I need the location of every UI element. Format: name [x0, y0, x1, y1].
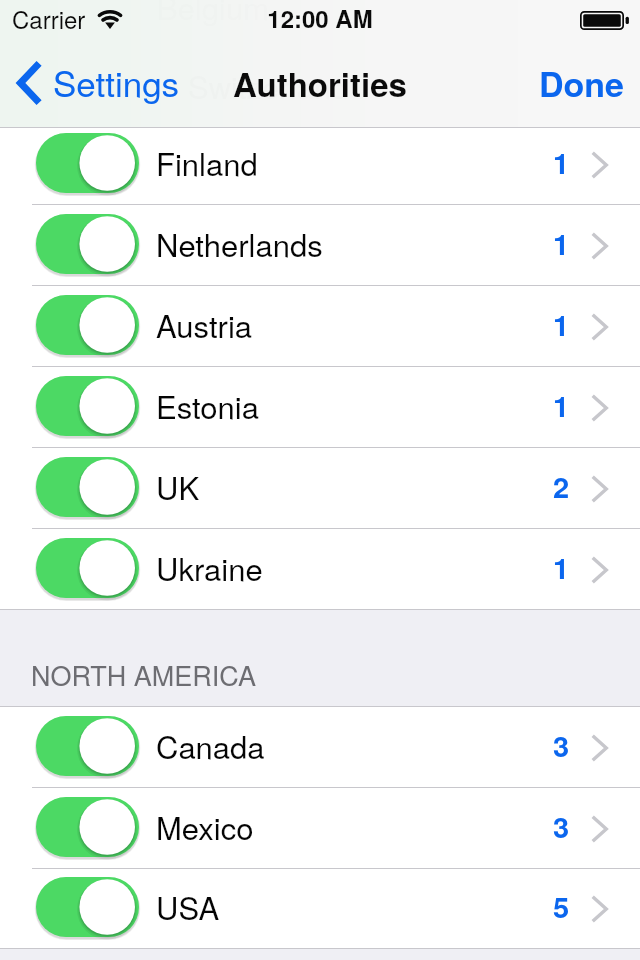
staticText: Netherlands: [156, 221, 323, 265]
button[interactable]: Toggle: [32, 873, 143, 941]
button[interactable]: Settings: [0, 50, 192, 118]
button[interactable]: Toggle: [0, 448, 640, 529]
button[interactable]: Toggle: [0, 788, 640, 869]
staticText: USA: [156, 884, 220, 928]
staticText: 1: [553, 384, 570, 426]
button[interactable]: Toggle: [0, 286, 640, 367]
button[interactable]: Toggle: [0, 367, 640, 448]
staticText: 3: [553, 805, 570, 847]
button[interactable]: Toggle: [32, 712, 143, 780]
staticText: 1: [553, 141, 570, 183]
button[interactable]: Toggle: [32, 793, 143, 861]
staticText: Finland: [156, 140, 258, 184]
button[interactable]: Toggle: [32, 534, 143, 602]
staticText: Canada: [156, 723, 265, 767]
staticText: Done: [539, 59, 624, 108]
staticText: Ukraine: [156, 545, 263, 589]
button[interactable]: Toggle: [32, 210, 143, 278]
staticText: 5: [553, 885, 570, 927]
staticText: Austria: [156, 302, 253, 346]
staticText: 3: [553, 724, 570, 766]
button[interactable]: Toggle: [0, 124, 640, 205]
staticText: Authorities: [233, 60, 407, 107]
button[interactable]: Toggle: [32, 453, 143, 521]
staticText: UK: [156, 464, 200, 508]
staticText: 12:00 AM: [0, 1, 640, 35]
button[interactable]: Toggle: [32, 129, 143, 197]
button[interactable]: Toggle: [32, 372, 143, 440]
staticText: Settings: [53, 57, 180, 107]
button[interactable]: Done: [521, 49, 640, 120]
staticText: 1: [553, 546, 570, 588]
staticText: Carrier: [12, 1, 86, 35]
staticText: 1: [553, 303, 570, 345]
button[interactable]: Toggle: [32, 291, 143, 359]
button[interactable]: Toggle: [0, 869, 640, 949]
button[interactable]: Toggle: [0, 707, 640, 788]
button[interactable]: Toggle: [0, 529, 640, 610]
staticText: 2: [553, 465, 570, 507]
button[interactable]: Toggle: [0, 205, 640, 286]
staticText: NORTH AMERICA: [31, 655, 257, 694]
staticText: 1: [553, 222, 570, 264]
staticText: Mexico: [156, 804, 254, 848]
staticText: Estonia: [156, 383, 259, 427]
staticText: Switzerland: [188, 63, 349, 107]
